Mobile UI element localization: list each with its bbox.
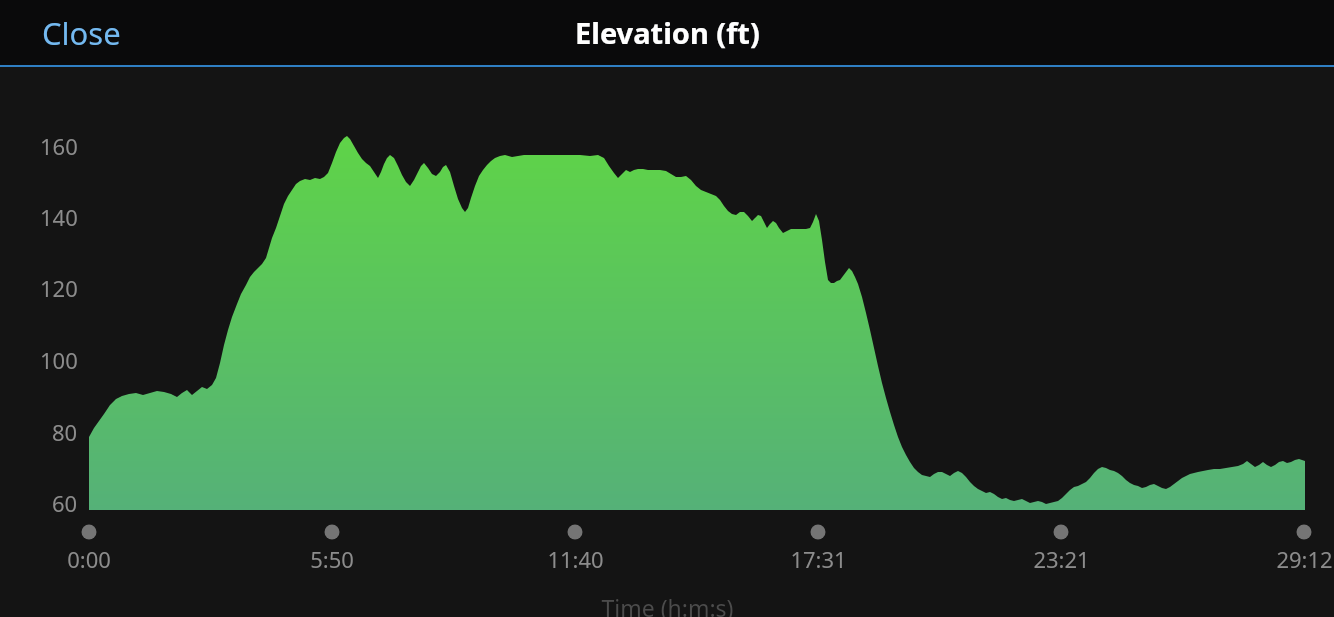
staticText: 11:40 [547, 544, 604, 574]
staticText: 23:21 [1033, 544, 1090, 574]
staticText: Close [42, 12, 121, 54]
staticText: 17:31 [790, 544, 847, 574]
staticText: 29:12 [1276, 544, 1333, 574]
staticText: 120 [40, 273, 78, 303]
staticText: 0:00 [67, 544, 111, 574]
staticText: 80 [52, 417, 78, 447]
staticText: 160 [40, 131, 78, 161]
button[interactable]: Close [0, 0, 149, 65]
staticText: 60 [52, 488, 78, 518]
staticText: 140 [40, 202, 78, 232]
staticText: Time (h:m:s) [601, 592, 734, 617]
staticText: 5:50 [310, 544, 354, 574]
staticText: Elevation (ft) [575, 13, 760, 52]
staticText: 100 [40, 345, 78, 375]
